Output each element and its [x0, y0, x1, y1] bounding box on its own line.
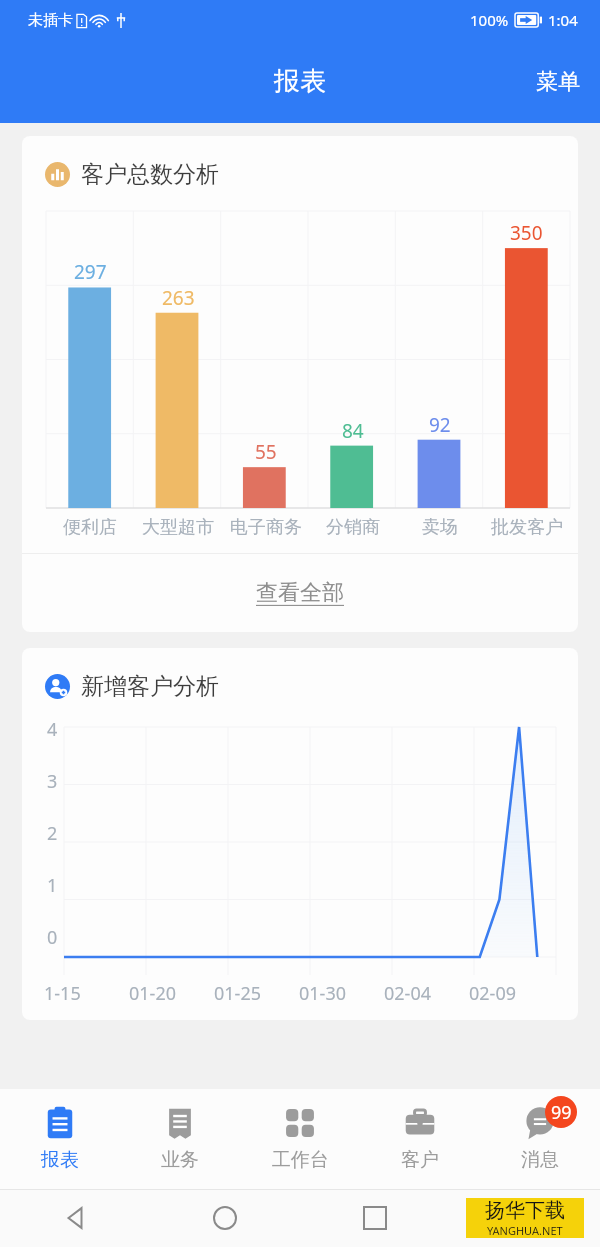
button[interactable]: 工作台 — [240, 1089, 360, 1189]
staticText: 1:04 — [548, 10, 578, 30]
button[interactable]: Back — [53, 1196, 97, 1240]
staticText: 297 — [74, 259, 107, 285]
button[interactable]: 客户 — [360, 1089, 480, 1189]
staticText: 报表 — [41, 1148, 79, 1172]
staticText: 01-25 — [214, 981, 261, 1006]
staticText: 消息 — [521, 1148, 559, 1172]
staticText: 4 — [47, 717, 58, 742]
staticText: 批发客户 — [491, 516, 563, 539]
button[interactable]: 报表 — [0, 1089, 120, 1189]
staticText: 未插卡 — [28, 11, 73, 30]
staticText: 55 — [255, 439, 277, 465]
staticText: 电子商务 — [230, 516, 302, 539]
staticText: 工作台 — [272, 1148, 329, 1172]
staticText: 便利店 — [63, 516, 117, 539]
button[interactable]: 99 — [480, 1089, 600, 1189]
staticText: 新增客户分析 — [81, 672, 219, 701]
button[interactable]: Recents — [353, 1196, 397, 1240]
staticText: 菜单 — [536, 68, 580, 96]
staticText: 分销商 — [326, 516, 380, 539]
staticText: 卖场 — [422, 516, 458, 539]
button[interactable]: 业务 — [120, 1089, 240, 1189]
staticText: 0 — [47, 925, 58, 950]
staticText: 1 — [47, 873, 58, 898]
staticText: 100% — [470, 10, 509, 30]
staticText: 客户总数分析 — [81, 160, 219, 189]
staticText: 报表 — [274, 65, 326, 98]
button[interactable]: 菜单 — [516, 52, 600, 112]
staticText: 查看全部 — [256, 579, 344, 607]
staticText: 客户 — [401, 1148, 439, 1172]
staticText: 大型超市 — [142, 516, 214, 539]
staticText: 350 — [510, 220, 543, 246]
staticText: 01-20 — [129, 981, 176, 1006]
button[interactable]: Home — [203, 1196, 247, 1240]
staticText: 3 — [47, 769, 58, 794]
staticText: 扬华下载 — [485, 1198, 565, 1223]
staticText: 1-15 — [44, 981, 81, 1006]
staticText: 99 — [551, 1100, 572, 1125]
staticText: 92 — [429, 412, 451, 438]
staticText: 02-04 — [384, 981, 431, 1006]
staticText: 2 — [47, 821, 58, 846]
staticText: YANGHUA.NET — [487, 1223, 563, 1238]
staticText: 业务 — [161, 1148, 199, 1172]
staticText: 02-09 — [469, 981, 516, 1006]
staticText: 263 — [162, 285, 195, 311]
staticText: 84 — [342, 418, 364, 444]
button[interactable]: 查看全部 — [22, 554, 578, 632]
staticText: 01-30 — [299, 981, 346, 1006]
